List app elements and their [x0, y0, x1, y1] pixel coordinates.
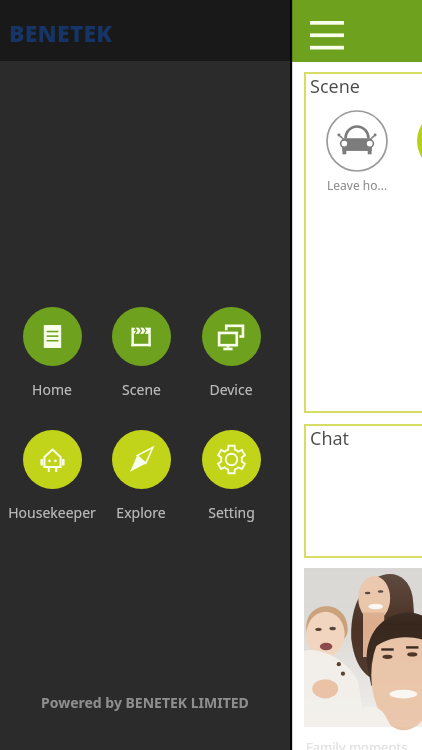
staticText: Scene [310, 74, 360, 99]
button[interactable]: Home [0, 307, 112, 399]
button[interactable]: Scene [81, 307, 201, 399]
staticText: BENETEK [9, 17, 113, 48]
staticText: Leave ho... [327, 177, 388, 193]
staticText: Explore [116, 503, 166, 522]
staticText: Setting [208, 503, 255, 522]
staticText: Scene [122, 380, 161, 399]
staticText: Family moments [306, 738, 408, 750]
button[interactable]: Device [171, 307, 291, 399]
staticText: Housekeeper [8, 503, 96, 522]
staticText: Device [209, 380, 253, 399]
button[interactable]: Setting [171, 430, 291, 522]
button[interactable]: Leave home scene [326, 110, 388, 172]
button[interactable]: Family photo [304, 568, 422, 727]
staticText: Powered by BENETEK LIMITED [41, 693, 249, 712]
button[interactable]: Explore [81, 430, 201, 522]
button[interactable]: Chat [304, 424, 422, 558]
staticText: Chat [310, 426, 350, 451]
button[interactable]: Open navigation menu [292, 0, 422, 62]
staticText: Home [32, 380, 72, 399]
button[interactable]: Housekeeper [0, 430, 112, 522]
